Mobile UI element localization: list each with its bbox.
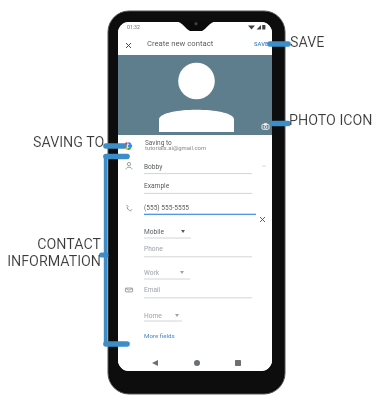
button[interactable]: Recents bbox=[229, 354, 247, 371]
staticText: Phone bbox=[144, 245, 163, 253]
button[interactable]: (555) 555-5555 bbox=[144, 204, 256, 217]
button[interactable]: SAVE bbox=[253, 36, 270, 52]
staticText: Email bbox=[144, 286, 161, 294]
staticText: Create new contact bbox=[147, 39, 214, 48]
button[interactable]: Email bbox=[144, 286, 252, 301]
button[interactable]: Contact name bbox=[123, 160, 135, 172]
button[interactable]: Change photo bbox=[259, 120, 271, 132]
staticText: PHOTO ICON bbox=[289, 112, 373, 129]
staticText: Work bbox=[144, 269, 160, 277]
staticText: 01:32 bbox=[127, 24, 140, 30]
staticText: Example bbox=[144, 182, 170, 190]
button[interactable]: Back bbox=[146, 354, 164, 371]
button[interactable]: More fields bbox=[144, 330, 180, 342]
button[interactable]: Home bbox=[188, 354, 206, 371]
staticText: CONTACT INFORMATION bbox=[0, 236, 101, 270]
button[interactable]: Phone bbox=[144, 245, 252, 260]
button[interactable]: Mobile bbox=[144, 228, 191, 242]
button[interactable]: Example bbox=[144, 182, 252, 196]
button[interactable]: Bobby bbox=[144, 163, 252, 177]
button[interactable]: Close bbox=[118, 35, 139, 55]
staticText: Saving to bbox=[145, 139, 172, 147]
staticText: Home bbox=[144, 312, 162, 320]
button[interactable]: Home bbox=[144, 312, 185, 325]
staticText: More fields bbox=[144, 332, 175, 339]
staticText: SAVE bbox=[254, 41, 269, 48]
button[interactable]: Email bbox=[123, 284, 135, 296]
button[interactable]: Clear phone number bbox=[256, 213, 268, 225]
staticText: SAVE bbox=[290, 34, 325, 51]
button[interactable]: Work bbox=[144, 269, 190, 283]
button[interactable]: Phone bbox=[123, 202, 135, 214]
staticText: Mobile bbox=[144, 228, 164, 236]
staticText: (555) 555-5555 bbox=[144, 204, 190, 212]
staticText: Bobby bbox=[144, 163, 163, 171]
staticText: tutorials.ai@gmail.com bbox=[145, 144, 207, 151]
button[interactable]: Saving to bbox=[118, 136, 272, 160]
staticText: SAVING TO bbox=[33, 134, 105, 151]
